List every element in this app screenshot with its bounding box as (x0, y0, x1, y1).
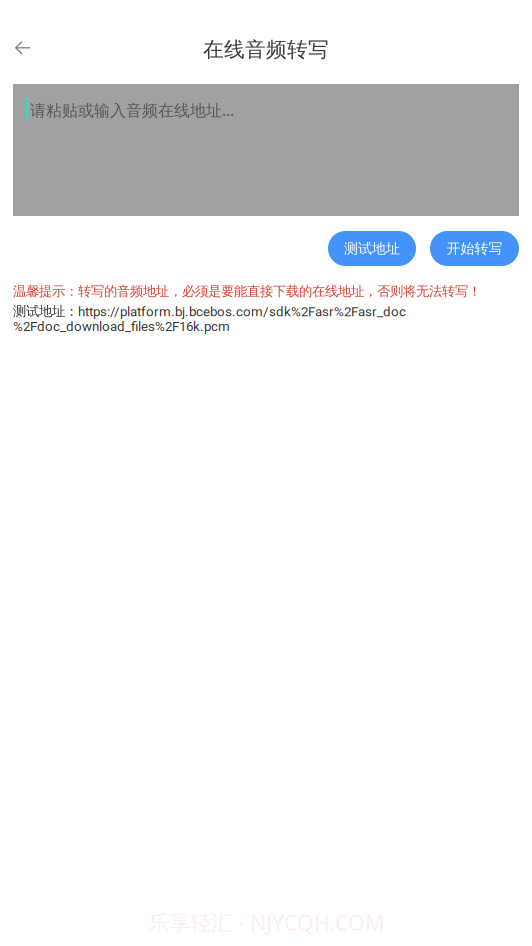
button[interactable]: Back (0, 25, 46, 71)
staticText: 在线音频转写 (203, 36, 329, 62)
staticText: 测试地址：https://platform.bj.bcebos.com/sdk%… (13, 303, 406, 320)
staticText: 测试地址 (344, 240, 400, 257)
staticText: 请粘贴或输入音频在线地址... (30, 99, 234, 121)
button[interactable]: Audio URL input (13, 84, 519, 216)
staticText: 开始转写 (446, 240, 502, 257)
button[interactable]: 开始转写 (430, 231, 519, 266)
staticText: 温馨提示：转写的音频地址，必须是要能直接下载的在线地址，否则将无法转写！ (13, 283, 481, 300)
staticText: %2Fdoc_download_files%2F16k.pcm (13, 319, 230, 334)
staticText: 乐享轻汇 · NJYCQH.COM (148, 908, 384, 937)
button[interactable]: 测试地址 (328, 231, 416, 266)
